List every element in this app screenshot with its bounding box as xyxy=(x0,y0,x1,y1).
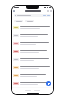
button[interactable] xyxy=(12,63,53,71)
button[interactable] xyxy=(12,79,53,87)
button[interactable] xyxy=(12,39,53,47)
button[interactable] xyxy=(12,47,53,55)
button[interactable] xyxy=(14,20,23,22)
button[interactable]: Menu xyxy=(13,10,15,12)
button[interactable] xyxy=(25,20,34,22)
button[interactable] xyxy=(12,71,53,79)
button[interactable] xyxy=(12,55,53,63)
button[interactable] xyxy=(14,14,51,17)
button[interactable] xyxy=(12,23,53,31)
button[interactable]: Add xyxy=(46,81,51,86)
button[interactable] xyxy=(12,31,53,39)
